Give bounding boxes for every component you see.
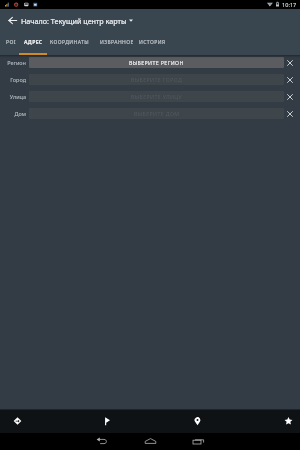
button[interactable]: ИСТОРИЯ bbox=[134, 32, 171, 55]
staticText: Регион bbox=[0, 59, 26, 66]
button[interactable]: ВЫБЕРИТЕ РЕГИОН bbox=[29, 57, 284, 68]
button[interactable]: Начало: Текущий центр карты bbox=[20, 9, 134, 32]
button[interactable]: Route bbox=[96, 409, 118, 433]
button[interactable]: ИЗБРАННОЕ bbox=[94, 32, 139, 55]
button[interactable]: Back bbox=[2, 10, 23, 31]
button[interactable]: Clear Город bbox=[284, 71, 295, 88]
staticText: Город bbox=[0, 76, 26, 83]
button[interactable]: Favorites bbox=[277, 409, 299, 433]
button[interactable]: Navigate bbox=[6, 409, 28, 433]
staticText: Начало: Текущий центр карты bbox=[21, 16, 127, 26]
staticText: КООРДИНАТЫ bbox=[50, 39, 89, 46]
staticText: ИЗБРАННОЕ bbox=[100, 39, 134, 46]
button[interactable]: Back bbox=[86, 433, 118, 450]
staticText: АДРЕС bbox=[24, 39, 43, 46]
staticText: Дом bbox=[0, 110, 26, 117]
button[interactable]: Clear Дом bbox=[284, 105, 295, 122]
staticText: ВЫБЕРИТЕ РЕГИОН bbox=[129, 59, 184, 66]
button[interactable]: Recents bbox=[182, 433, 214, 450]
staticText: ИСТОРИЯ bbox=[139, 39, 166, 46]
button[interactable]: КООРДИНАТЫ bbox=[46, 32, 93, 55]
button[interactable]: АДРЕС bbox=[19, 32, 47, 55]
staticText: 10:17 bbox=[282, 1, 297, 9]
button[interactable]: Place bbox=[186, 409, 208, 433]
button[interactable]: POI bbox=[2, 32, 19, 55]
staticText: ВЫБЕРИТЕ ДОМ bbox=[134, 110, 180, 117]
button[interactable]: Clear Улица bbox=[284, 88, 295, 105]
button[interactable]: Home bbox=[134, 433, 166, 450]
staticText: ВЫБЕРИТЕ УЛИЦУ bbox=[131, 93, 183, 100]
button[interactable]: Clear Регион bbox=[284, 54, 295, 71]
staticText: ВЫБЕРИТЕ ГОРОД bbox=[131, 76, 183, 83]
staticText: Улица bbox=[0, 93, 26, 100]
staticText: POI bbox=[6, 39, 16, 46]
